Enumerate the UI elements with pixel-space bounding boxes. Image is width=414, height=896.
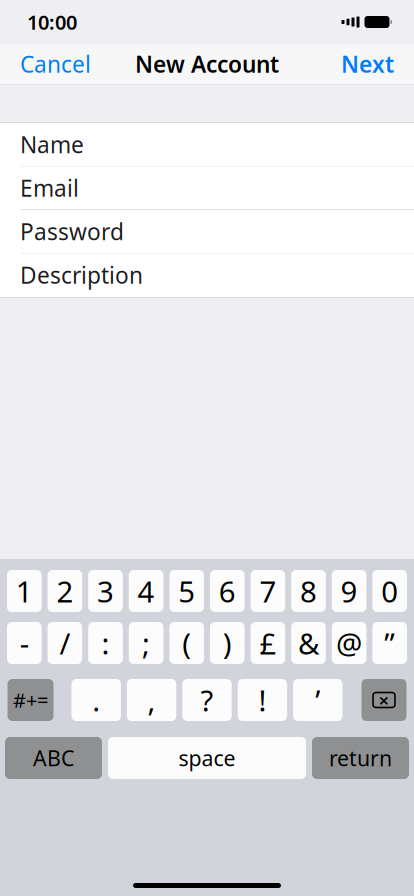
button[interactable]: : [88,622,123,664]
button[interactable]: return [312,737,409,779]
staticText: Next [341,49,394,79]
button[interactable]: ’ [293,679,342,721]
button[interactable]: 9 [332,570,366,612]
staticText: return [329,744,392,772]
button[interactable]: . [71,679,121,721]
staticText: 5 [178,571,195,610]
staticText: ? [200,680,213,719]
button[interactable]: #+= [7,679,53,721]
staticText: ! [258,680,266,719]
button[interactable]: 3 [88,570,123,612]
staticText: £ [259,623,276,662]
staticText: , [148,680,156,719]
button[interactable]: 8 [291,570,326,612]
button[interactable]: ! [238,679,287,721]
staticText: / [59,623,70,662]
button[interactable]: 2 [48,570,82,612]
staticText: ’ [315,680,320,719]
button[interactable]: / [48,622,82,664]
button[interactable]: £ [251,622,285,664]
staticText: ( [182,623,191,662]
button[interactable]: ) [210,622,245,664]
staticText: Name [20,129,84,159]
button[interactable]: ” [372,622,407,664]
button[interactable]: Delete [361,679,406,721]
staticText: @ [336,623,362,662]
button[interactable]: Description [0,253,414,297]
staticText: Email [20,173,79,203]
staticText: 0 [381,571,398,610]
button[interactable]: 7 [251,570,285,612]
button[interactable]: @ [332,622,366,664]
staticText: 4 [138,571,155,610]
staticText: 8 [300,571,317,610]
staticText: . [92,680,100,719]
button[interactable]: 4 [129,570,163,612]
staticText: 6 [219,571,236,610]
button[interactable]: space [108,737,306,779]
staticText: ” [384,623,395,662]
staticText: ) [223,623,232,662]
button[interactable]: Password [0,210,414,253]
button[interactable]: 6 [210,570,245,612]
staticText: 7 [259,571,276,610]
button[interactable]: ABC [5,737,102,779]
staticText: #+= [13,687,48,713]
button[interactable]: Email [0,166,414,210]
button[interactable]: Name [0,123,414,166]
staticText: 3 [97,571,114,610]
staticText: ABC [33,744,74,772]
button[interactable]: 1 [7,570,42,612]
button[interactable]: - [7,622,42,664]
staticText: : [101,623,109,662]
staticText: & [298,623,319,662]
button[interactable]: ( [169,622,204,664]
staticText: 10:00 [27,9,77,35]
staticText: Password [20,216,124,246]
staticText: × [378,688,389,712]
staticText: space [178,744,235,772]
staticText: Cancel [20,49,91,79]
button[interactable]: Cancel [12,41,99,87]
button[interactable]: 0 [372,570,407,612]
button[interactable]: & [291,622,326,664]
button[interactable]: Next [333,41,402,87]
button[interactable]: ? [182,679,232,721]
staticText: 2 [56,571,73,610]
button[interactable]: 5 [169,570,204,612]
staticText: - [20,623,29,662]
staticText: 9 [341,571,358,610]
staticText: New Account [135,49,279,79]
button[interactable]: , [127,679,176,721]
staticText: 1 [16,571,33,610]
button[interactable]: ; [129,622,163,664]
staticText: Description [20,260,143,290]
staticText: ; [142,623,150,662]
